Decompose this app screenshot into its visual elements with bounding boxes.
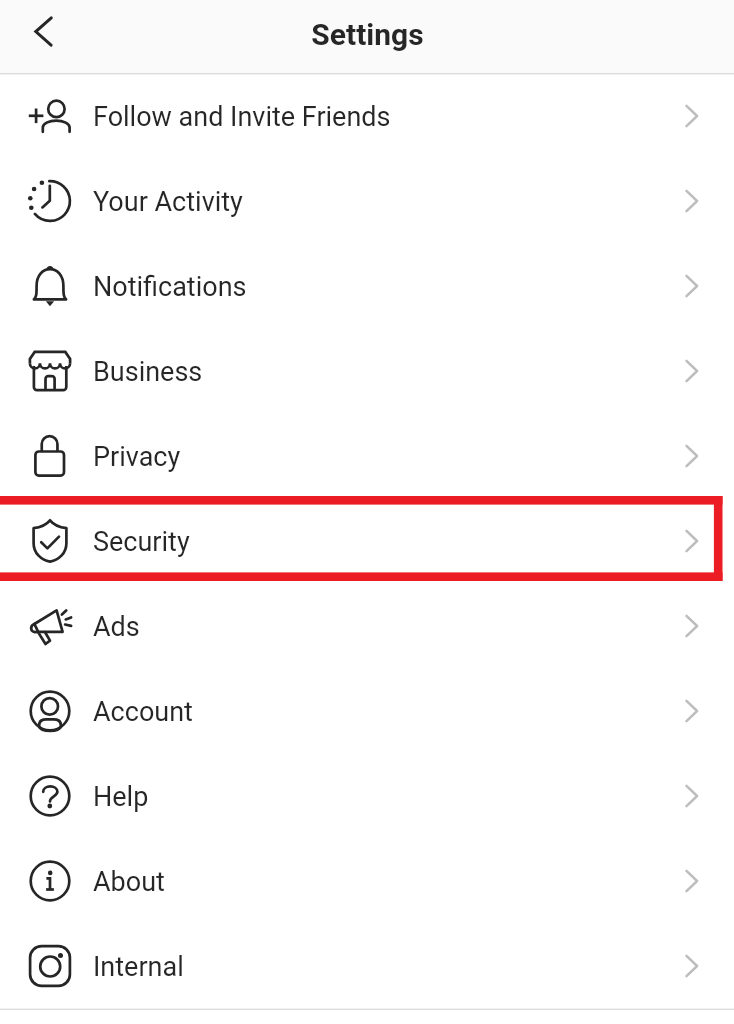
staticText: Security [93, 526, 190, 558]
button[interactable]: Your Activity [0, 158, 734, 243]
button[interactable]: Help [0, 753, 734, 838]
staticText: Help [93, 781, 149, 813]
staticText: Settings [311, 17, 424, 52]
button[interactable]: About [0, 838, 734, 923]
staticText: Business [93, 356, 203, 388]
button[interactable]: Internal [0, 923, 734, 1008]
staticText: Ads [93, 611, 140, 643]
staticText: Follow and Invite Friends [93, 101, 391, 133]
staticText: Your Activity [93, 186, 243, 218]
button[interactable]: Account [0, 668, 734, 753]
staticText: Notifications [93, 271, 247, 303]
button[interactable]: Follow and Invite Friends [0, 73, 734, 158]
staticText: Internal [93, 951, 184, 983]
button[interactable]: Privacy [0, 413, 734, 498]
button[interactable]: Ads [0, 583, 734, 668]
button[interactable]: Notifications [0, 243, 734, 328]
button[interactable]: Business [0, 328, 734, 413]
staticText: About [93, 866, 165, 898]
staticText: Privacy [93, 441, 181, 473]
staticText: Account [93, 696, 193, 728]
button[interactable]: Security [0, 498, 734, 583]
button[interactable]: Back [15, 4, 71, 60]
